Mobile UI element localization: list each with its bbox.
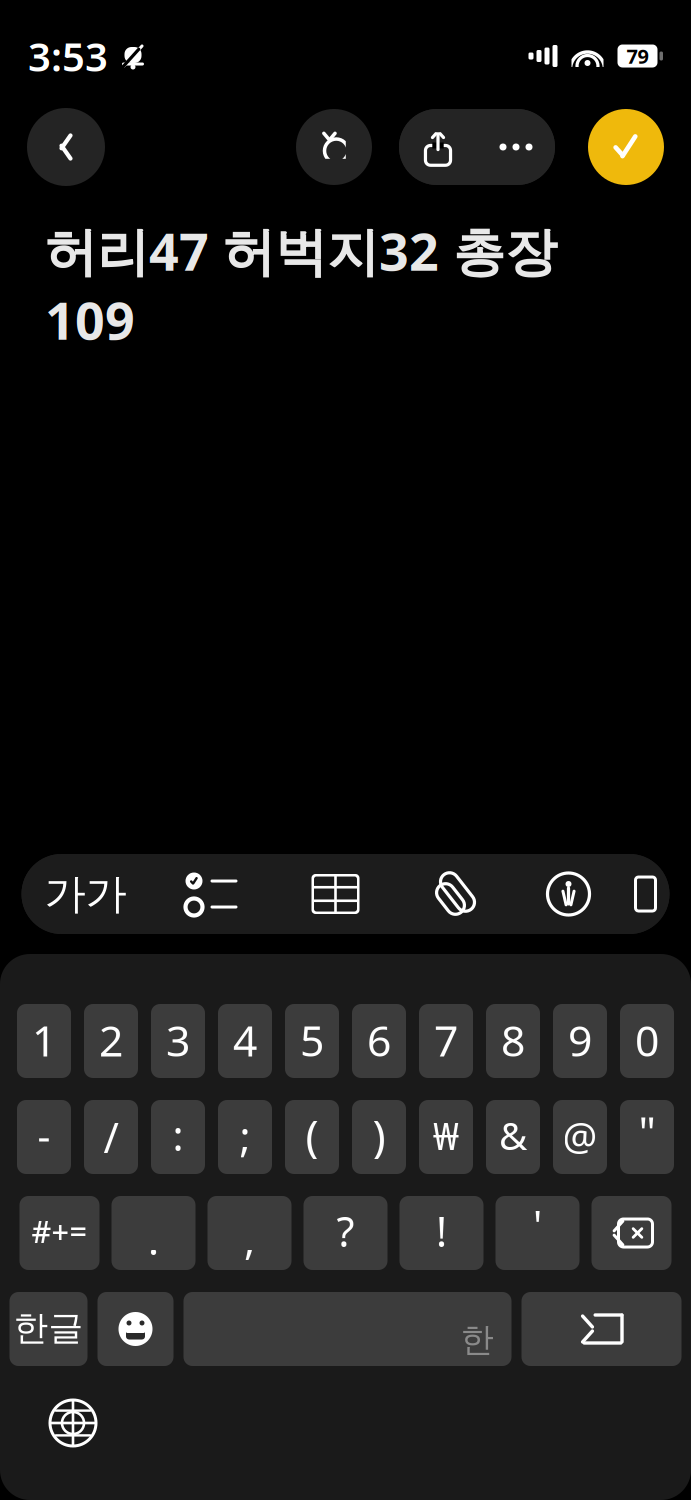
staticText: ?: [336, 1204, 354, 1258]
button[interactable]: ): [352, 1100, 406, 1174]
button[interactable]: 한글: [9, 1292, 87, 1366]
button[interactable]: :: [151, 1100, 205, 1174]
button[interactable]: ": [620, 1100, 674, 1174]
button[interactable]: Emoji: [97, 1292, 173, 1366]
staticText: 8: [501, 1012, 525, 1068]
button[interactable]: Share: [399, 109, 477, 185]
button[interactable]: .: [111, 1196, 195, 1270]
button[interactable]: Attach: [397, 854, 511, 934]
button[interactable]: Done: [588, 109, 664, 185]
staticText: 9: [568, 1012, 592, 1068]
staticText: /: [103, 1110, 118, 1164]
button[interactable]: 3: [151, 1004, 205, 1078]
button[interactable]: Space: [183, 1292, 511, 1366]
staticText: @: [562, 1109, 597, 1161]
staticText: 3:53: [28, 29, 108, 82]
button[interactable]: 0: [620, 1004, 674, 1078]
staticText: 6: [367, 1012, 391, 1068]
button[interactable]: Return: [521, 1292, 681, 1366]
staticText: 한: [460, 1319, 493, 1360]
staticText: #+=: [31, 1211, 87, 1251]
button[interactable]: #+=: [19, 1196, 99, 1270]
staticText: &: [499, 1109, 527, 1161]
staticText: 5: [300, 1012, 324, 1068]
button[interactable]: Scan document: [625, 854, 669, 934]
button[interactable]: 1: [17, 1004, 71, 1078]
staticText: 4: [233, 1012, 257, 1068]
staticText: 1: [32, 1012, 56, 1068]
staticText: 2: [99, 1012, 123, 1068]
staticText: 0: [635, 1012, 659, 1068]
button[interactable]: Switch keyboard language: [30, 1380, 116, 1466]
button[interactable]: 가가: [21, 854, 149, 934]
staticText: -: [37, 1108, 50, 1161]
button[interactable]: Undo: [296, 109, 372, 185]
button[interactable]: 6: [352, 1004, 406, 1078]
staticText: 7: [434, 1012, 458, 1068]
staticText: ": [638, 1103, 655, 1159]
staticText: 가가: [44, 869, 126, 919]
button[interactable]: !: [399, 1196, 483, 1270]
button[interactable]: Back: [27, 108, 105, 186]
staticText: !: [436, 1204, 447, 1258]
button[interactable]: Table: [273, 854, 397, 934]
staticText: :: [172, 1108, 183, 1162]
button[interactable]: (: [285, 1100, 339, 1174]
button[interactable]: /: [84, 1100, 138, 1174]
staticText: ): [372, 1106, 385, 1164]
button[interactable]: 2: [84, 1004, 138, 1078]
staticText: ₩: [433, 1109, 459, 1161]
button[interactable]: ?: [303, 1196, 387, 1270]
button[interactable]: Delete: [591, 1196, 671, 1270]
staticText: (: [305, 1106, 318, 1164]
button[interactable]: @: [553, 1100, 607, 1174]
staticText: ': [533, 1198, 542, 1252]
staticText: 79: [626, 43, 648, 69]
staticText: 허리47 허벅지32 총장109: [45, 216, 557, 354]
button[interactable]: 4: [218, 1004, 272, 1078]
staticText: 한글: [13, 1307, 83, 1349]
button[interactable]: Markup: [511, 854, 625, 934]
button[interactable]: 9: [553, 1004, 607, 1078]
staticText: ,: [244, 1212, 255, 1266]
button[interactable]: 7: [419, 1004, 473, 1078]
button[interactable]: More options: [477, 109, 555, 185]
button[interactable]: -: [17, 1100, 71, 1174]
button[interactable]: ': [495, 1196, 579, 1270]
button[interactable]: Checklist: [149, 854, 273, 934]
button[interactable]: 8: [486, 1004, 540, 1078]
button[interactable]: ;: [218, 1100, 272, 1174]
button[interactable]: &: [486, 1100, 540, 1174]
staticText: ;: [239, 1109, 250, 1163]
button[interactable]: 5: [285, 1004, 339, 1078]
button[interactable]: ₩: [419, 1100, 473, 1174]
staticText: .: [148, 1212, 159, 1266]
staticText: 3: [166, 1012, 190, 1068]
button[interactable]: ,: [207, 1196, 291, 1270]
